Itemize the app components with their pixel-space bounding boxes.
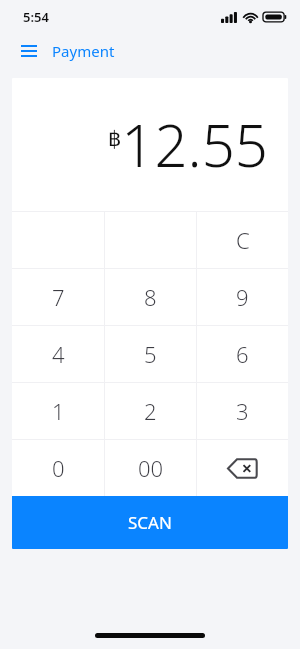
- staticText: 2: [144, 396, 157, 426]
- button[interactable]: 3: [197, 383, 288, 439]
- button[interactable]: Menu: [14, 36, 44, 66]
- button[interactable]: 7: [12, 269, 104, 325]
- button[interactable]: Backspace: [197, 440, 288, 496]
- staticText: 6: [236, 339, 249, 369]
- staticText: SCAN: [128, 511, 172, 534]
- button[interactable]: 0: [12, 440, 104, 496]
- button[interactable]: 5: [105, 326, 196, 382]
- button[interactable]: SCAN: [12, 496, 288, 549]
- staticText: 00: [138, 453, 164, 483]
- button[interactable]: 00: [105, 440, 196, 496]
- button[interactable]: C: [197, 212, 288, 268]
- button[interactable]: 8: [105, 269, 196, 325]
- staticText: 0: [52, 453, 65, 483]
- staticText: 9: [236, 282, 249, 312]
- button[interactable]: 1: [12, 383, 104, 439]
- staticText: 4: [52, 339, 65, 369]
- staticText: 5:54: [23, 8, 49, 26]
- staticText: 1: [52, 396, 65, 426]
- staticText: 7: [52, 282, 65, 312]
- staticText: C: [236, 225, 250, 255]
- button[interactable]: 4: [12, 326, 104, 382]
- staticText: 5: [144, 339, 157, 369]
- button[interactable]: 2: [105, 383, 196, 439]
- button[interactable]: 6: [197, 326, 288, 382]
- staticText: 3: [236, 396, 249, 426]
- staticText: 8: [144, 282, 157, 312]
- button[interactable]: 9: [197, 269, 288, 325]
- staticText: Payment: [52, 41, 115, 61]
- staticText: ฿12.55: [108, 105, 268, 184]
